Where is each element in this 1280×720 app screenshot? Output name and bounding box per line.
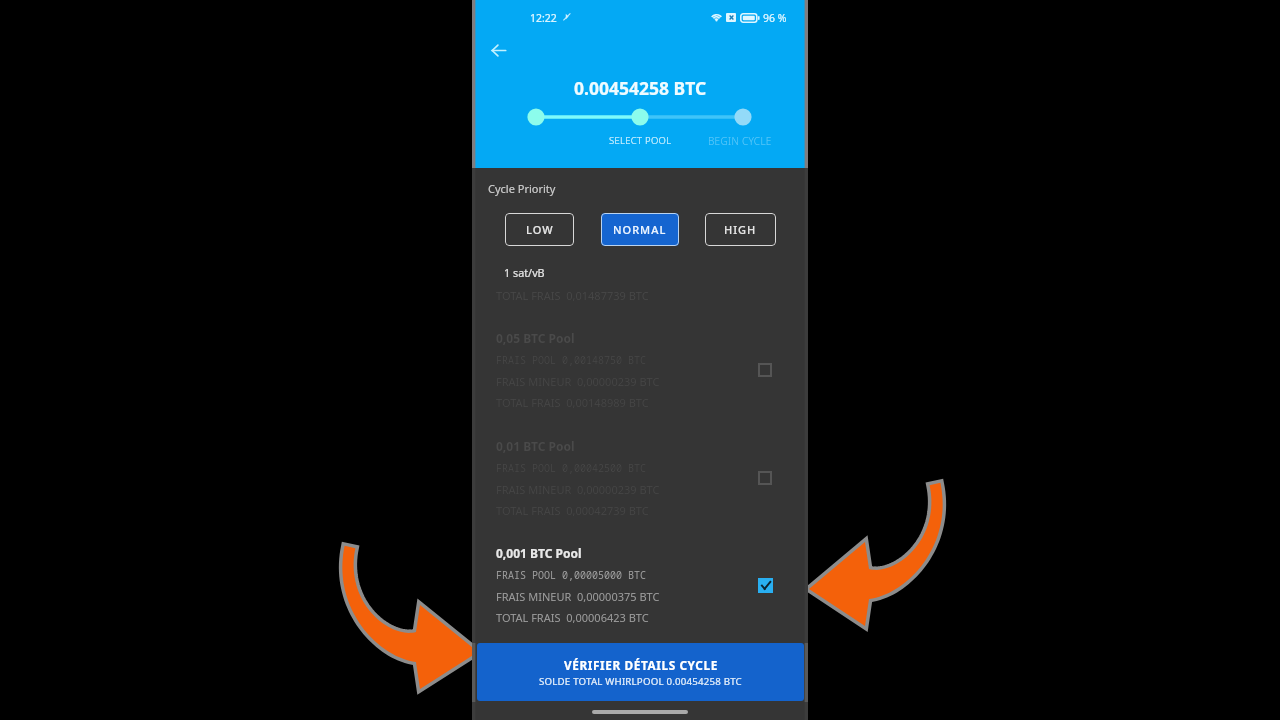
button[interactable]: Select 0,001 BTC Pool	[751, 571, 779, 599]
staticText: FRAIS MINEUR 0,00000375 BTC	[496, 589, 660, 604]
staticText: FRAIS MINEUR 0,00000239 BTC	[496, 482, 660, 497]
staticText: VÉRIFIER DÉTAILS CYCLE	[564, 657, 718, 673]
button[interactable]: Back	[484, 36, 512, 64]
staticText: Cycle Priority	[488, 181, 556, 196]
staticText: 0,01 BTC Pool	[496, 438, 575, 454]
staticText: BEGIN CYCLE	[708, 134, 772, 148]
staticText: LOW	[526, 222, 554, 237]
button[interactable]: Select 0,05 BTC Pool	[751, 356, 779, 384]
staticText: NORMAL	[613, 222, 667, 237]
staticText: FRAIS POOL 0,00042500 BTC	[496, 461, 646, 475]
staticText: 96 %	[763, 11, 787, 25]
staticText: HIGH	[724, 222, 757, 237]
button[interactable]: HIGH	[705, 213, 776, 246]
button[interactable]: Select 0,01 BTC Pool	[751, 464, 779, 492]
staticText: FRAIS POOL 0,00148750 BTC	[496, 353, 646, 367]
staticText: FRAIS POOL 0,00005000 BTC	[496, 568, 646, 582]
button[interactable]: VÉRIFIER DÉTAILS CYCLE	[477, 643, 804, 701]
staticText: 12:22	[530, 11, 557, 25]
staticText: SELECT POOL	[609, 134, 672, 147]
staticText: TOTAL FRAIS 0,00148989 BTC	[496, 395, 649, 410]
staticText: TOTAL FRAIS 0,00006423 BTC	[496, 610, 649, 625]
staticText: TOTAL FRAIS 0,01487739 BTC	[496, 288, 649, 303]
button[interactable]: LOW	[505, 213, 574, 246]
staticText: FRAIS MINEUR 0,00000239 BTC	[496, 374, 660, 389]
staticText: 0,001 BTC Pool	[496, 545, 582, 561]
staticText: 0,05 BTC Pool	[496, 330, 575, 346]
button[interactable]: NORMAL	[601, 213, 679, 246]
staticText: TOTAL FRAIS 0,00042739 BTC	[496, 503, 649, 518]
staticText: 0.00454258 BTC	[574, 76, 707, 100]
staticText: SOLDE TOTAL WHIRLPOOL 0.00454258 BTC	[539, 675, 742, 688]
staticText: 1 sat/vB	[504, 265, 545, 280]
